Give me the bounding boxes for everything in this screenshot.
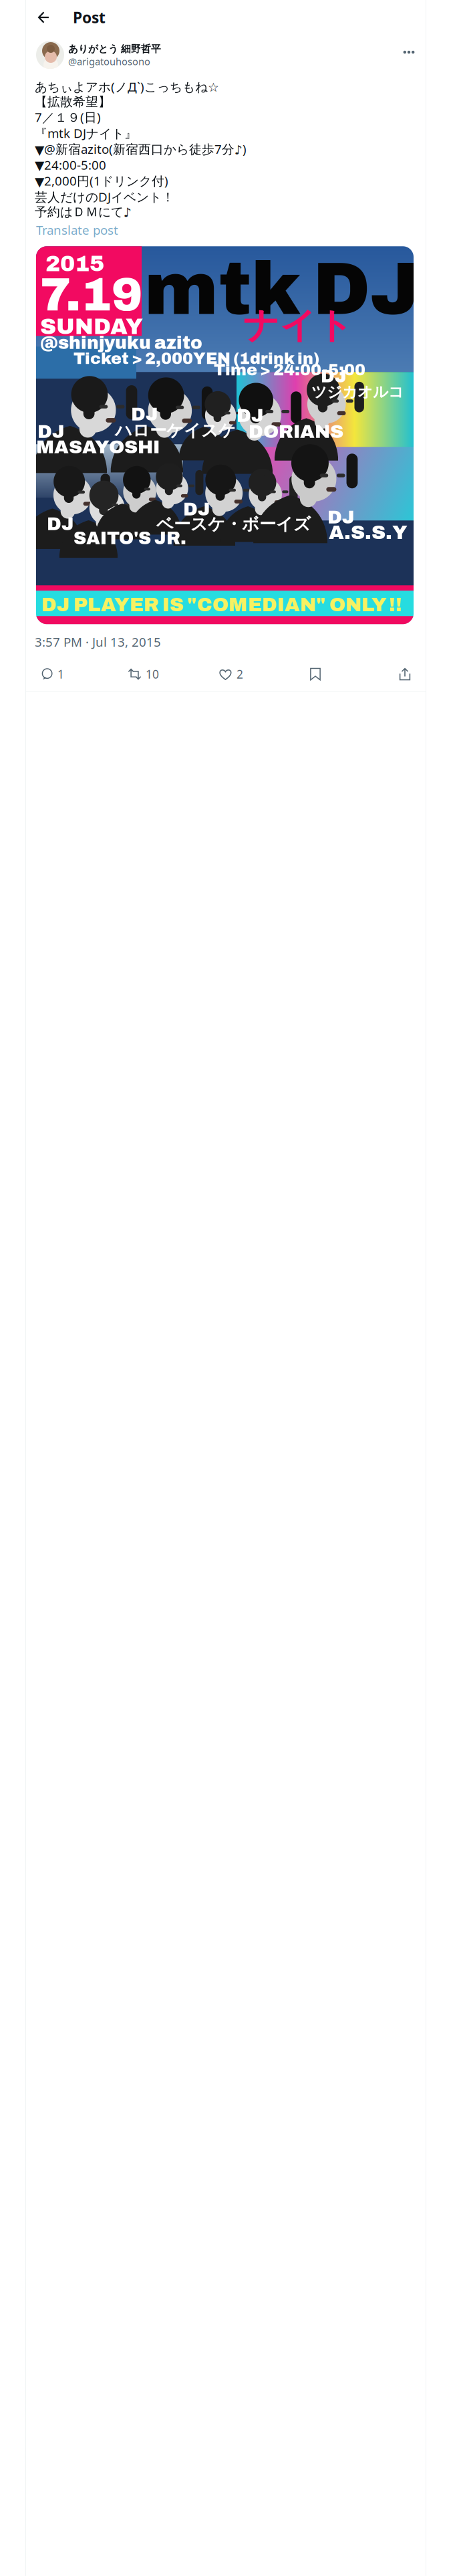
staticText: Translate post bbox=[36, 222, 118, 238]
staticText: ベースケ・ボーイズ bbox=[156, 514, 311, 535]
button[interactable]: Share bbox=[399, 665, 411, 684]
staticText: SUNDAY bbox=[40, 315, 143, 339]
button[interactable]: Back bbox=[33, 7, 54, 28]
button[interactable]: Translate post bbox=[36, 222, 118, 238]
button[interactable]: Repost bbox=[128, 665, 159, 684]
staticText: 2015 bbox=[45, 252, 104, 276]
staticText: DJ PLAYER IS "COMEDIAN" ONLY !! bbox=[41, 594, 402, 615]
staticText: 1 bbox=[57, 666, 64, 682]
staticText: DJ bbox=[321, 367, 347, 386]
staticText: あちぃよアホ(ノД`)こっちもね☆ 【拡散希望】 7／１９(日) 『mtk DJ… bbox=[35, 78, 247, 220]
staticText: Post bbox=[73, 7, 106, 27]
staticText: DJ bbox=[131, 404, 158, 425]
staticText: mtk DJ bbox=[144, 249, 420, 329]
staticText: 7.19 bbox=[40, 270, 142, 320]
staticText: @shinjyuku azito bbox=[40, 333, 202, 353]
staticText: DORIANS bbox=[249, 422, 343, 442]
button[interactable]: Attached image bbox=[36, 246, 414, 624]
button[interactable]: Bookmark bbox=[310, 665, 321, 684]
staticText: Ticket > 2,000YEN (1drink in) bbox=[73, 350, 319, 367]
staticText: A.S.S.Y bbox=[329, 522, 408, 543]
button[interactable]: More bbox=[398, 43, 420, 61]
staticText: SAITO'S JR. bbox=[73, 529, 186, 548]
staticText: ありがとう 細野哲平 bbox=[68, 43, 161, 55]
button[interactable]: Reply bbox=[41, 665, 64, 684]
staticText: MASAYOSHI bbox=[36, 437, 160, 457]
staticText: DJ bbox=[47, 514, 74, 534]
button[interactable]: Like bbox=[219, 665, 243, 684]
staticText: @arigatouhosono bbox=[68, 55, 150, 68]
staticText: 10 bbox=[146, 666, 159, 682]
staticText: DJ bbox=[183, 499, 210, 519]
button[interactable]: Profile photo bbox=[36, 41, 64, 69]
staticText: DJ bbox=[327, 507, 355, 528]
staticText: ツジカオルコ bbox=[311, 383, 404, 401]
staticText: ハローケイスケ bbox=[115, 420, 236, 441]
staticText: 3:57 PM · Jul 13, 2015 bbox=[35, 634, 161, 650]
staticText: Time > 24:00-5:00 bbox=[214, 361, 365, 379]
staticText: DJ bbox=[37, 422, 65, 442]
staticText: DJ bbox=[237, 405, 264, 426]
staticText: 2 bbox=[237, 666, 243, 682]
staticText: ナイト bbox=[243, 304, 353, 348]
